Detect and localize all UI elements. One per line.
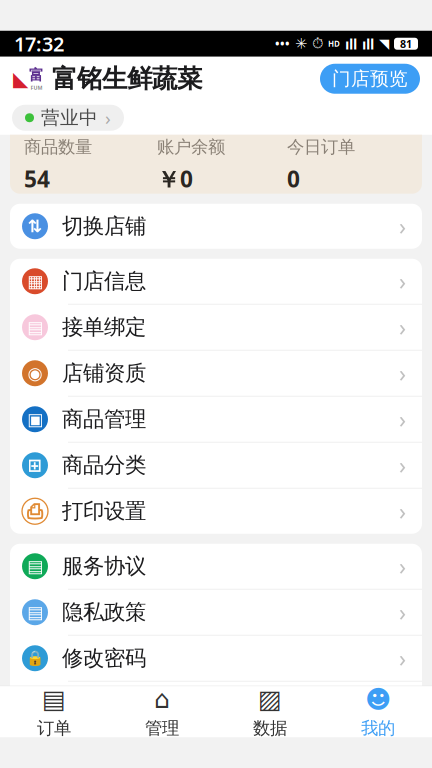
staticText: ▤ [27, 602, 43, 622]
staticText: › [399, 404, 406, 434]
staticText: 17:32 [14, 30, 64, 57]
staticText: ıll [362, 34, 374, 53]
button[interactable]: ⎙ [10, 489, 422, 534]
staticText: 商品管理 [62, 406, 146, 432]
staticText: ◣ [13, 67, 28, 90]
staticText: 富铭生鲜蔬菜 [52, 63, 202, 94]
button[interactable]: ▤ [10, 590, 422, 636]
staticText: 修改密码 [62, 645, 146, 671]
button[interactable]: 门店预览 [320, 64, 420, 94]
staticText: ⊞ [27, 455, 42, 475]
staticText: ◥ [379, 36, 389, 51]
staticText: › [399, 266, 406, 296]
staticText: › [399, 211, 406, 241]
button[interactable]: ⊞ [10, 443, 422, 489]
staticText: › [399, 496, 406, 526]
staticText: ◉ [27, 363, 42, 383]
staticText: 今日订单 [287, 136, 355, 158]
staticText: 81 [400, 37, 412, 51]
staticText: ▤ [42, 685, 66, 713]
staticText: ✳ [295, 35, 307, 52]
staticText: 账户余额 [157, 136, 225, 158]
staticText: 商品分类 [62, 452, 146, 478]
staticText: › [105, 105, 111, 130]
staticText: 店铺信息 [24, 100, 104, 124]
staticText: 🔒 [26, 650, 44, 667]
staticText: 0 [287, 164, 300, 194]
staticText: ⌂ [154, 685, 170, 713]
button[interactable]: ⌂ [108, 686, 216, 737]
staticText: 订单 [37, 717, 71, 739]
staticText: 服务协议 [62, 553, 146, 579]
staticText: ☻ [365, 685, 391, 713]
staticText: 管理 [145, 717, 179, 739]
staticText: 接单绑定 [62, 314, 146, 340]
staticText: 数据 [253, 717, 287, 739]
button[interactable]: ▨ [216, 686, 324, 737]
staticText: ￥0 [157, 164, 193, 194]
button[interactable]: 🔒 [10, 636, 422, 682]
staticText: ▦ [27, 271, 43, 291]
staticText: ⇅ [27, 216, 42, 236]
staticText: 商品数量 [24, 136, 92, 158]
staticText: › [399, 358, 406, 388]
staticText: › [399, 597, 406, 627]
button[interactable]: ◉ [10, 351, 422, 397]
button[interactable]: ⇅ [10, 204, 422, 249]
staticText: › [399, 450, 406, 480]
staticText: ıll [345, 34, 357, 53]
button[interactable]: ▤ [0, 686, 108, 737]
staticText: 营业中 [41, 106, 98, 129]
staticText: › [399, 551, 406, 581]
staticText: 54 [24, 164, 50, 194]
staticText: ▨ [258, 685, 282, 713]
staticText: › [399, 643, 406, 673]
staticText: 我的 [361, 717, 395, 739]
button[interactable]: ▤ [10, 305, 422, 351]
staticText: › [399, 312, 406, 342]
staticText: ••• [275, 36, 290, 52]
button[interactable]: ▦ [10, 259, 422, 305]
button[interactable]: ☻ [324, 686, 432, 737]
staticText: 店铺资质 [62, 360, 146, 386]
button[interactable]: ◔ [10, 682, 422, 727]
staticText: 富 [29, 66, 44, 84]
button[interactable]: 营业中 [12, 105, 124, 131]
staticText: ▤ [27, 556, 43, 576]
staticText: 切换店铺 [62, 213, 146, 239]
staticText: 门店信息 [62, 268, 146, 294]
button[interactable]: ▤ [10, 544, 422, 590]
staticText: 通知设置 [62, 691, 146, 717]
button[interactable]: ▣ [10, 397, 422, 443]
staticText: 打印设置 [62, 498, 146, 524]
staticText: ⎙ [26, 494, 44, 528]
staticText: ⏱ [312, 37, 323, 51]
staticText: FUM [30, 84, 42, 91]
staticText: 门店预览 [332, 67, 408, 90]
staticText: ▣ [27, 409, 43, 429]
staticText: HD [328, 38, 340, 49]
staticText: 隐私政策 [62, 599, 146, 625]
staticText: ▤ [27, 317, 43, 337]
